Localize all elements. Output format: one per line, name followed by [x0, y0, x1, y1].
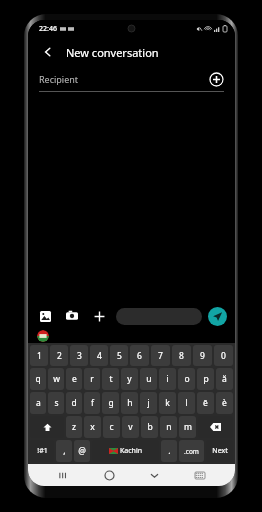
staticText: 8 [179, 350, 184, 362]
button[interactable]: , [56, 440, 72, 462]
button[interactable]: x [84, 416, 101, 438]
button[interactable]: Backspace [198, 416, 233, 438]
staticText: 22:46 [39, 24, 57, 34]
button[interactable]: c [103, 416, 120, 438]
staticText: @ [78, 445, 86, 457]
button[interactable]: p [197, 368, 214, 390]
button[interactable]: k [159, 392, 176, 414]
button[interactable]: t [102, 368, 119, 390]
button[interactable]: 2 [50, 345, 68, 366]
button[interactable]: ē [197, 392, 214, 414]
staticText: w [53, 373, 60, 385]
staticText: i [166, 373, 169, 385]
button[interactable]: u [140, 368, 157, 390]
button[interactable]: o [178, 368, 195, 390]
button[interactable]: More options [90, 307, 108, 325]
button[interactable]: Language [37, 330, 49, 342]
button[interactable]: Recents [52, 464, 74, 486]
staticText: v [128, 421, 133, 433]
button[interactable]: 7 [151, 345, 170, 366]
button[interactable]: !#1 [30, 440, 54, 462]
button[interactable]: g [102, 392, 119, 414]
staticText: z [72, 421, 76, 433]
button[interactable]: f [84, 392, 100, 414]
staticText: !#1 [37, 446, 48, 456]
button[interactable]: m [179, 416, 196, 438]
staticText: è [222, 397, 227, 409]
staticText: h [127, 397, 133, 409]
button[interactable]: e [66, 368, 82, 390]
button[interactable]: a [30, 392, 46, 414]
button[interactable]: s [48, 392, 64, 414]
staticText: o [184, 373, 190, 385]
staticText: n [166, 421, 172, 433]
button[interactable]: w [48, 368, 64, 390]
button[interactable]: j [140, 392, 157, 414]
button[interactable]: Next [206, 440, 233, 462]
staticText: New conversation [66, 45, 159, 60]
staticText: j [147, 397, 150, 409]
button[interactable]: y [121, 368, 138, 390]
button[interactable]: Attach image [36, 307, 54, 325]
button[interactable]: Back [38, 42, 58, 62]
button[interactable]: @ [74, 440, 90, 462]
button[interactable]: è [216, 392, 233, 414]
button[interactable]: h [121, 392, 138, 414]
button[interactable]: 5 [110, 345, 128, 366]
staticText: r [90, 373, 94, 385]
button[interactable]: Camera [63, 307, 81, 325]
staticText: ă [222, 373, 227, 385]
button[interactable]: . [161, 440, 177, 462]
button[interactable]: Hide keyboard [143, 464, 165, 486]
button[interactable]: 4 [90, 345, 108, 366]
button[interactable]: Send [208, 307, 227, 326]
staticText: l [185, 397, 188, 409]
button[interactable]: l [178, 392, 195, 414]
button[interactable]: 3 [70, 345, 88, 366]
button[interactable]: 8 [172, 345, 191, 366]
staticText: p [203, 373, 209, 385]
staticText: y [127, 373, 132, 385]
button[interactable]: v [122, 416, 139, 438]
button[interactable]: q [30, 368, 46, 390]
staticText: q [35, 373, 41, 385]
staticText: .com [184, 447, 199, 456]
button[interactable]: 0 [214, 345, 233, 366]
button[interactable]: i [159, 368, 176, 390]
staticText: a [36, 397, 41, 409]
button[interactable]: ă [216, 368, 233, 390]
button[interactable]: Shift [30, 416, 64, 438]
button[interactable]: d [66, 392, 82, 414]
button[interactable]: Kachin [92, 440, 159, 462]
staticText: 6 [137, 350, 142, 362]
staticText: t [109, 373, 113, 385]
staticText: 9 [200, 350, 205, 362]
button[interactable]: 9 [193, 345, 212, 366]
staticText: Next [212, 446, 228, 456]
button[interactable]: Home [98, 464, 120, 486]
staticText: 1 [37, 350, 42, 362]
button[interactable]: .com [179, 440, 204, 462]
staticText: b [147, 421, 153, 433]
button[interactable] [116, 308, 202, 325]
button[interactable]: 1 [30, 345, 48, 366]
staticText: ē [203, 397, 208, 409]
button[interactable]: n [160, 416, 177, 438]
staticText: s [54, 397, 59, 409]
staticText: Kachin [120, 446, 143, 456]
staticText: u [146, 373, 152, 385]
staticText: f [91, 397, 94, 409]
staticText: d [71, 397, 77, 409]
staticText: c [109, 421, 114, 433]
button[interactable]: Keyboard layout [189, 464, 211, 486]
staticText: g [108, 397, 114, 409]
staticText: k [165, 397, 170, 409]
button[interactable]: b [141, 416, 158, 438]
button[interactable]: Add recipient [208, 71, 224, 87]
button[interactable]: Recipient [39, 67, 224, 91]
button[interactable]: r [84, 368, 100, 390]
button[interactable]: 6 [130, 345, 149, 366]
staticText: 7 [158, 350, 163, 362]
button[interactable]: z [66, 416, 82, 438]
staticText: 2 [57, 350, 62, 362]
